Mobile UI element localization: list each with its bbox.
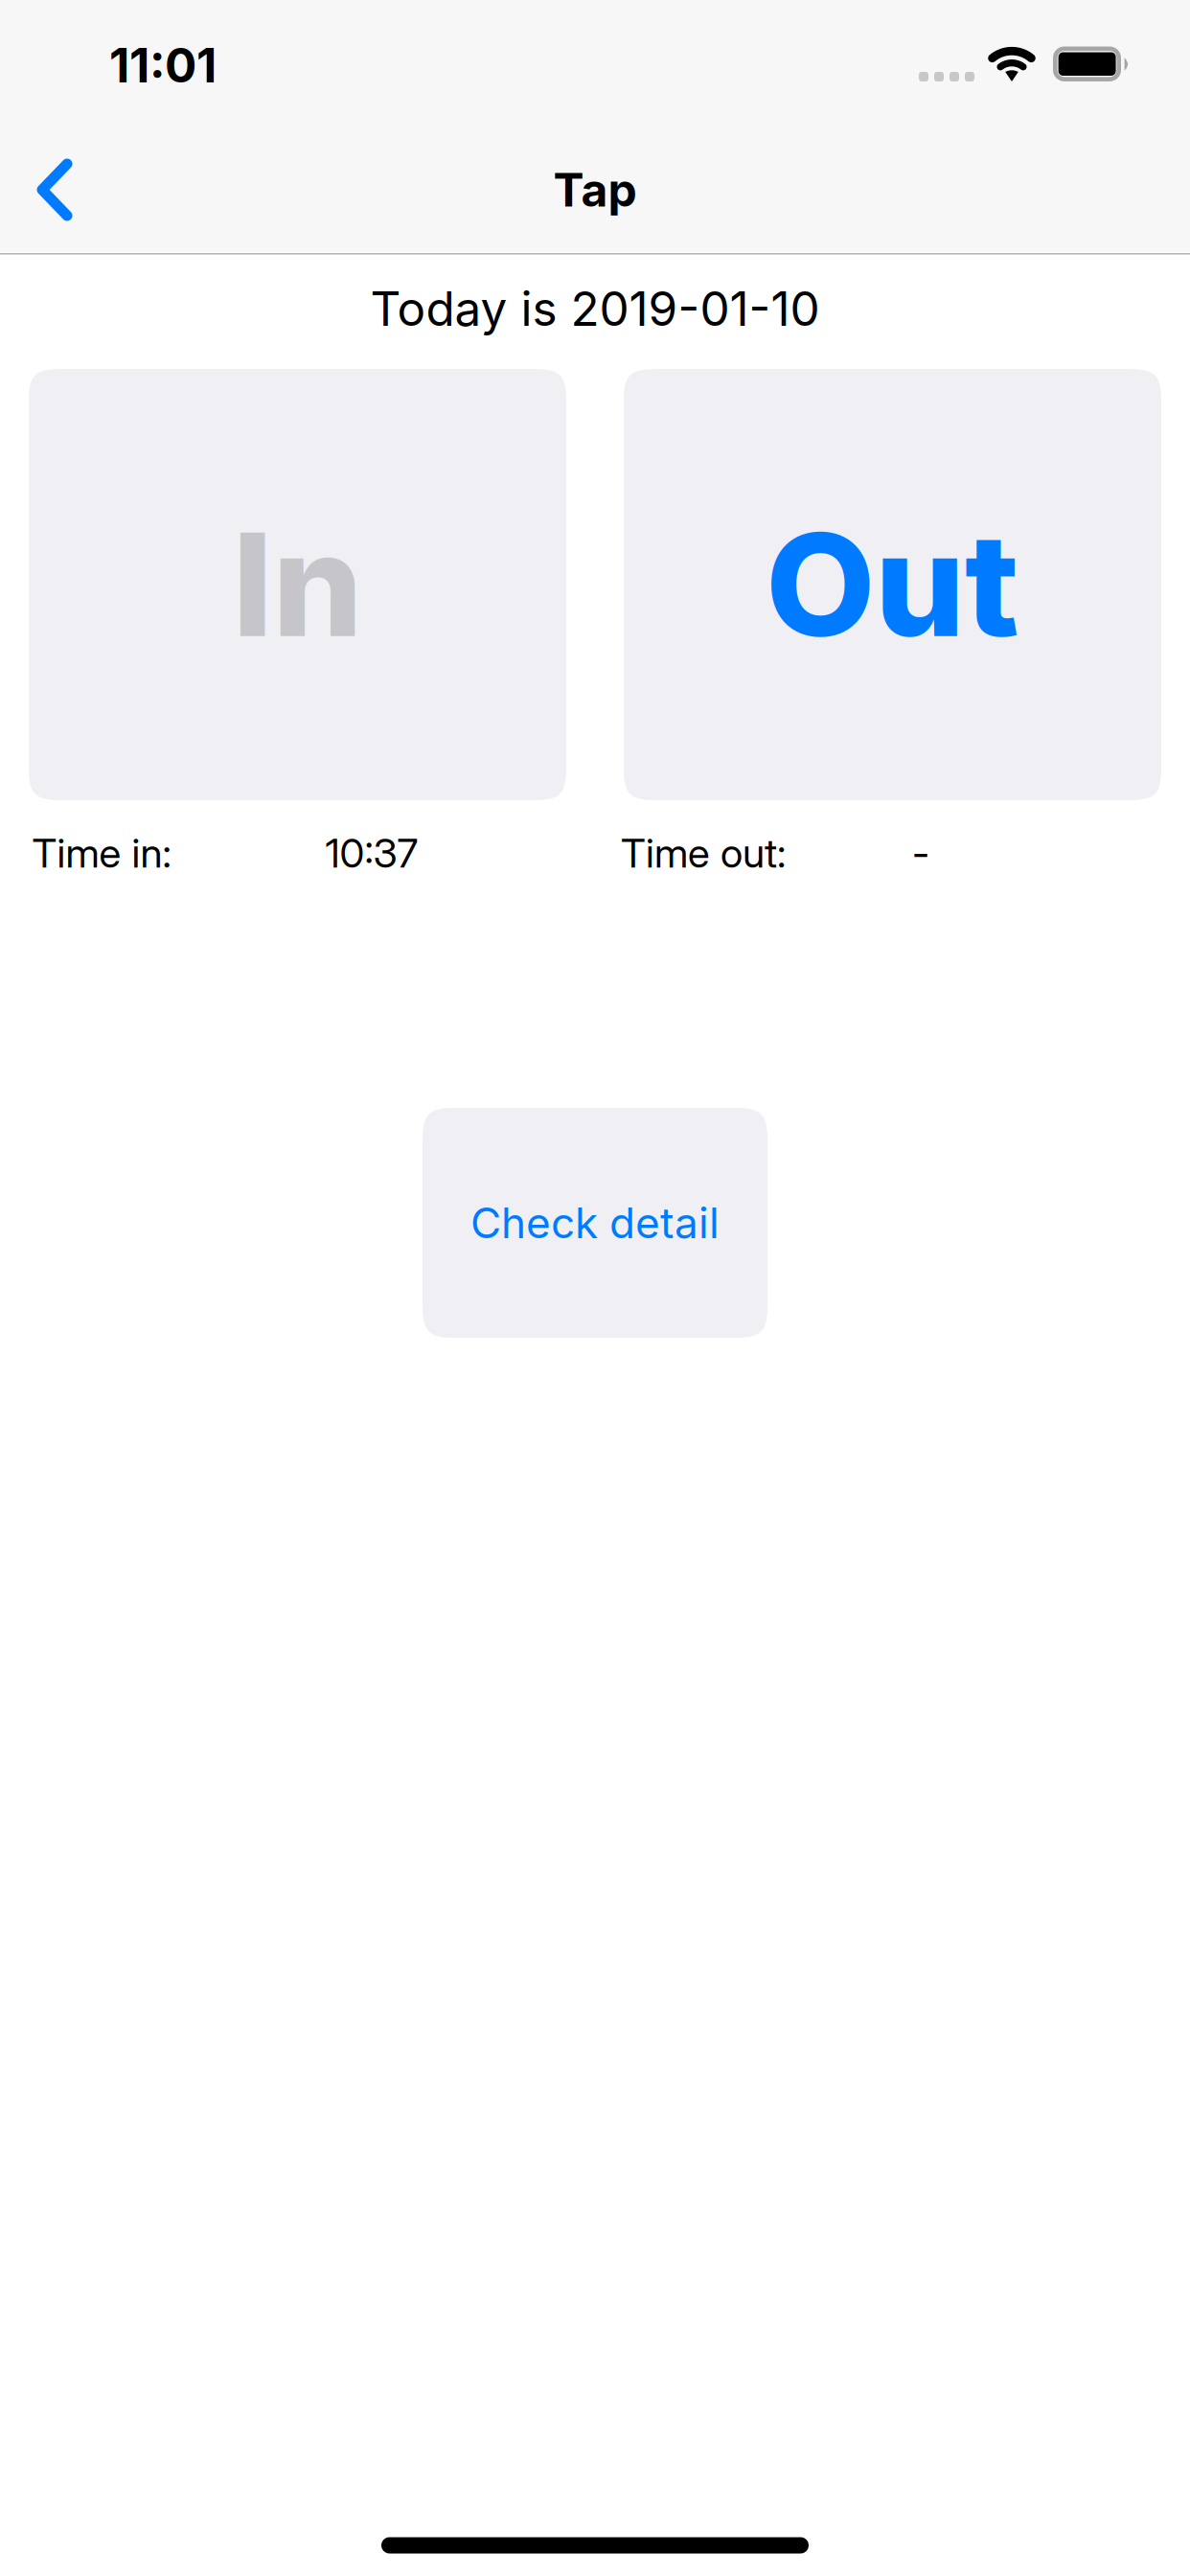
button[interactable]: Check detail: [423, 1108, 767, 1338]
button[interactable]: Out: [624, 369, 1161, 800]
staticText: Check detail: [470, 1197, 720, 1248]
staticText: Tap: [553, 162, 637, 218]
staticText: 10:37: [325, 829, 418, 877]
staticText: -: [912, 829, 929, 877]
staticText: Out: [766, 499, 1019, 670]
staticText: In: [232, 499, 363, 670]
staticText: 11:01: [109, 37, 217, 94]
staticText: Today is 2019-01-10: [370, 280, 820, 337]
button[interactable]: Back: [2, 137, 107, 242]
staticText: Time in:: [32, 829, 171, 877]
button[interactable]: In: [29, 369, 566, 800]
staticText: Time out:: [621, 829, 786, 877]
